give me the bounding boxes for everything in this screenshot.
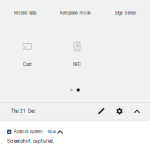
button[interactable]: Collapse	[128, 103, 146, 120]
staticText: Screenshot captured.	[7, 138, 54, 144]
button[interactable]: Cast	[0, 36, 50, 68]
staticText: Mobile data	[14, 10, 36, 16]
staticText: Thu 21 Dec	[11, 109, 35, 114]
button[interactable]: Settings	[111, 103, 128, 120]
staticText: Aeroplane mode	[59, 10, 90, 16]
staticText: Android system · now	[14, 129, 56, 134]
button[interactable]: Mobile data	[0, 8, 50, 18]
staticText: Edge Sense	[114, 10, 135, 16]
staticText: Cast	[23, 62, 31, 67]
button[interactable]: Aeroplane mode	[50, 8, 100, 18]
button[interactable]: NFC	[50, 36, 100, 68]
button[interactable]: Edge Sense	[100, 8, 150, 18]
button[interactable]: Android system · now	[0, 121, 150, 150]
staticText: NFC	[73, 62, 81, 67]
button[interactable]: Edit	[92, 103, 111, 120]
